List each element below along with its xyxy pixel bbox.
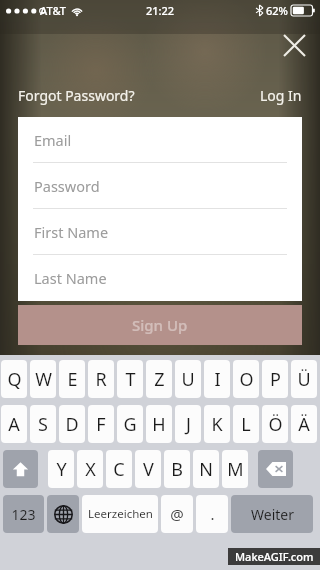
staticText: Q — [7, 367, 22, 392]
button[interactable]: Forgot Password? — [18, 86, 135, 105]
staticText: @ — [170, 504, 184, 524]
button[interactable]: H — [146, 405, 172, 443]
button[interactable]: D — [59, 405, 85, 443]
button[interactable]: T — [117, 360, 143, 398]
button[interactable]: 123 — [3, 495, 44, 533]
staticText: I — [214, 367, 221, 392]
button[interactable]: P — [262, 360, 288, 398]
button[interactable]: L — [233, 405, 259, 443]
button[interactable]: Leerzeichen — [82, 495, 158, 533]
button[interactable]: M — [222, 450, 248, 488]
staticText: F — [96, 412, 106, 437]
staticText: A — [8, 412, 20, 437]
button[interactable]: J — [175, 405, 201, 443]
staticText: Last Name — [34, 268, 107, 288]
staticText: 62% — [266, 3, 288, 18]
staticText: MakeAGIF.com — [235, 549, 314, 564]
staticText: D — [65, 412, 79, 437]
staticText: L — [241, 412, 251, 437]
staticText: O — [239, 367, 254, 392]
staticText: G — [123, 412, 137, 437]
button[interactable]: B — [164, 450, 190, 488]
staticText: U — [181, 367, 195, 392]
staticText: Z — [154, 367, 165, 392]
staticText: 123 — [11, 505, 36, 524]
button[interactable]: Ü — [291, 360, 317, 398]
button[interactable]: F — [88, 405, 114, 443]
staticText: W — [35, 367, 52, 392]
staticText: Email — [34, 130, 72, 150]
button[interactable]: Shift — [3, 450, 38, 488]
staticText: V — [143, 457, 154, 482]
button[interactable]: Backspace — [258, 450, 293, 488]
staticText: First Name — [34, 222, 109, 242]
staticText: X — [85, 457, 96, 482]
button[interactable]: Change keyboard language — [47, 495, 79, 533]
button[interactable]: Log In — [260, 86, 302, 105]
staticText: R — [95, 367, 107, 392]
staticText: Password — [34, 176, 100, 196]
button[interactable]: Ä — [291, 405, 317, 443]
button[interactable]: @ — [161, 495, 193, 533]
button[interactable]: Close — [275, 26, 313, 64]
staticText: Log In — [260, 86, 302, 105]
button[interactable]: Y — [48, 450, 74, 488]
staticText: Weiter — [251, 505, 294, 524]
staticText: H — [152, 412, 166, 437]
staticText: Ö — [268, 412, 283, 437]
staticText: Ä — [298, 412, 310, 437]
staticText: P — [270, 367, 281, 392]
button[interactable]: W — [30, 360, 56, 398]
button[interactable]: U — [175, 360, 201, 398]
staticText: E — [67, 367, 78, 392]
button[interactable]: A — [1, 405, 27, 443]
button[interactable]: G — [117, 405, 143, 443]
button[interactable]: Q — [1, 360, 27, 398]
button[interactable]: E — [59, 360, 85, 398]
staticText: B — [171, 457, 183, 482]
staticText: M — [227, 457, 244, 482]
button[interactable]: First Name — [18, 209, 302, 255]
button[interactable]: O — [233, 360, 259, 398]
staticText: Y — [56, 457, 67, 482]
staticText: C — [113, 457, 125, 482]
staticText: 21:22 — [146, 3, 175, 18]
button[interactable]: K — [204, 405, 230, 443]
button[interactable]: Password — [18, 163, 302, 209]
staticText: . — [210, 504, 215, 524]
staticText: J — [186, 412, 191, 437]
button[interactable]: . — [196, 495, 228, 533]
staticText: AT&T — [40, 3, 67, 18]
button[interactable]: Last Name — [18, 255, 302, 301]
button[interactable]: Weiter — [231, 495, 313, 533]
staticText: T — [125, 367, 136, 392]
button[interactable]: X — [77, 450, 103, 488]
button[interactable]: I — [204, 360, 230, 398]
button[interactable]: R — [88, 360, 114, 398]
staticText: Sign Up — [132, 315, 188, 335]
staticText: Forgot Password? — [18, 86, 135, 105]
button[interactable]: Sign Up — [18, 305, 302, 345]
staticText: K — [211, 412, 223, 437]
button[interactable]: C — [106, 450, 132, 488]
button[interactable]: Z — [146, 360, 172, 398]
staticText: S — [38, 412, 48, 437]
button[interactable]: Ö — [262, 405, 288, 443]
button[interactable]: N — [193, 450, 219, 488]
button[interactable]: S — [30, 405, 56, 443]
staticText: Ü — [297, 367, 311, 392]
staticText: N — [199, 457, 213, 482]
button[interactable]: V — [135, 450, 161, 488]
staticText: Leerzeichen — [88, 506, 153, 522]
button[interactable]: Email — [18, 117, 302, 163]
